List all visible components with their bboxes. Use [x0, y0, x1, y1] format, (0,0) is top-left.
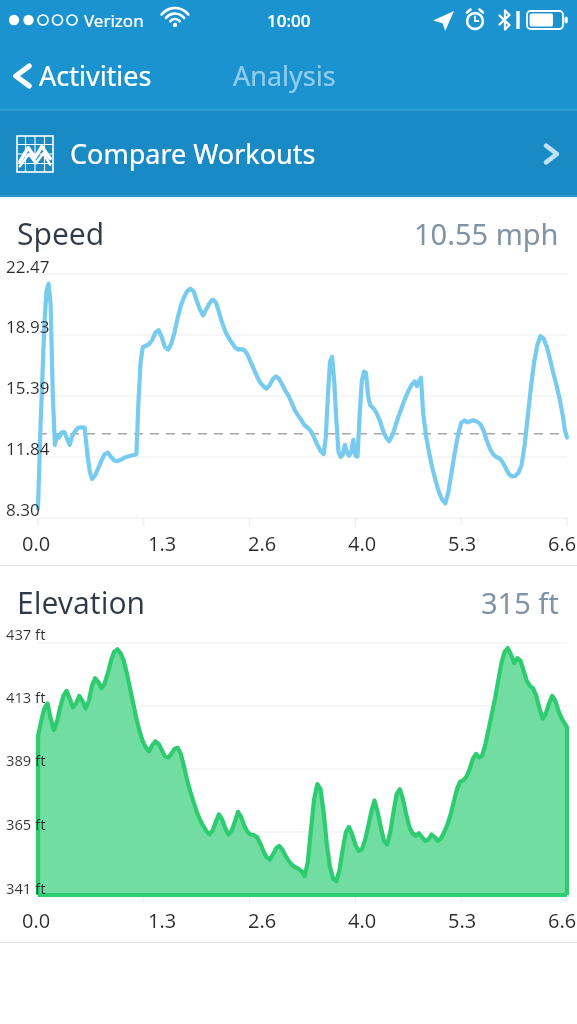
- staticText: Elevation: [17, 582, 146, 623]
- staticText: Analysis: [233, 57, 336, 94]
- staticText: 18.93: [6, 315, 50, 338]
- button[interactable]: Compare Workouts: [0, 110, 577, 197]
- staticText: 1.3: [148, 530, 177, 557]
- staticText: 1.3: [148, 907, 177, 934]
- staticText: 341 ft: [6, 878, 46, 898]
- staticText: 315 ft: [481, 583, 559, 622]
- button[interactable]: Activities: [0, 51, 162, 100]
- staticText: 2.6: [248, 907, 277, 934]
- staticText: 365 ft: [6, 814, 46, 834]
- staticText: Activities: [39, 57, 152, 94]
- staticText: Verizon: [84, 9, 144, 32]
- staticText: 11.84: [6, 437, 50, 460]
- staticText: 413 ft: [6, 687, 46, 707]
- staticText: 6.6: [548, 907, 577, 934]
- staticText: 5.3: [448, 907, 477, 934]
- staticText: 2.6: [248, 530, 277, 557]
- staticText: 10.55 mph: [414, 214, 559, 253]
- staticText: 8.30: [6, 498, 40, 521]
- staticText: 22.47: [6, 255, 50, 278]
- staticText: 0.0: [22, 907, 51, 934]
- staticText: 6.6: [548, 530, 577, 557]
- staticText: 15.39: [6, 376, 50, 399]
- staticText: 437 ft: [6, 624, 46, 644]
- other: Open Compare Workouts: [541, 139, 561, 169]
- staticText: Speed: [17, 213, 105, 254]
- staticText: Compare Workouts: [70, 135, 316, 172]
- staticText: 5.3: [448, 530, 477, 557]
- staticText: 389 ft: [6, 750, 46, 770]
- staticText: 4.0: [348, 907, 377, 934]
- staticText: 4.0: [348, 530, 377, 557]
- staticText: 0.0: [22, 530, 51, 557]
- staticText: 10:00: [267, 9, 311, 32]
